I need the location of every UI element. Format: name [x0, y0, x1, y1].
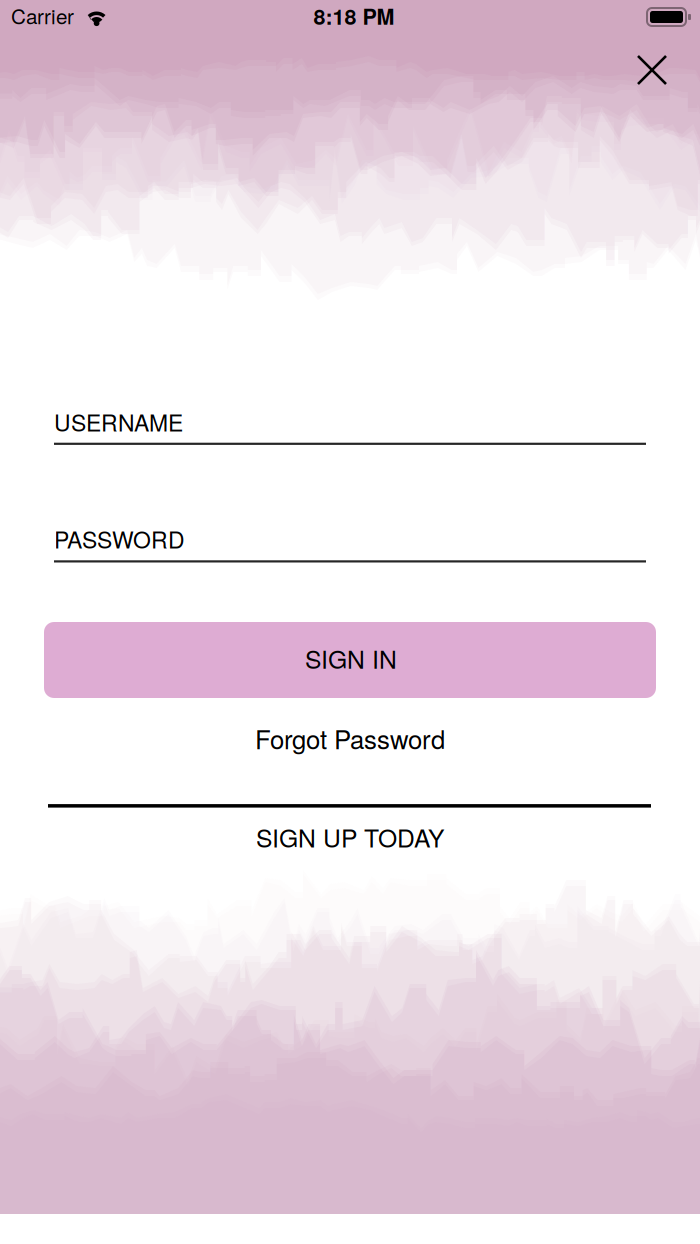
- staticText: Carrier: [11, 0, 74, 30]
- staticText: Forgot Password: [255, 720, 445, 756]
- button[interactable]: Forgot Password: [44, 720, 656, 756]
- staticText: 8:18 PM: [313, 0, 394, 31]
- staticText: USERNAME: [54, 405, 183, 438]
- staticText: SIGN UP TODAY: [256, 819, 444, 855]
- button[interactable]: PASSWORD: [54, 522, 646, 562]
- button[interactable]: SIGN UP TODAY: [44, 819, 656, 855]
- button[interactable]: Close: [622, 40, 682, 100]
- staticText: SIGN IN: [305, 640, 397, 676]
- button[interactable]: USERNAME: [54, 405, 646, 445]
- button[interactable]: SIGN IN: [44, 622, 656, 698]
- staticText: PASSWORD: [54, 522, 185, 555]
